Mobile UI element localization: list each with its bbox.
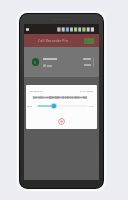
staticText: 00:00 [27, 105, 33, 108]
button[interactable]: S [24, 47, 99, 77]
staticText: 04/18/2019 [30, 90, 43, 93]
button[interactable]: Play recording [58, 118, 65, 125]
staticText: 41:01 Today [80, 90, 93, 93]
button[interactable]: Upgrade to Pro [84, 38, 94, 44]
staticText: S [34, 60, 37, 65]
staticText: Call Recorder Pro [38, 38, 69, 43]
staticText: 41:01 [89, 105, 95, 108]
